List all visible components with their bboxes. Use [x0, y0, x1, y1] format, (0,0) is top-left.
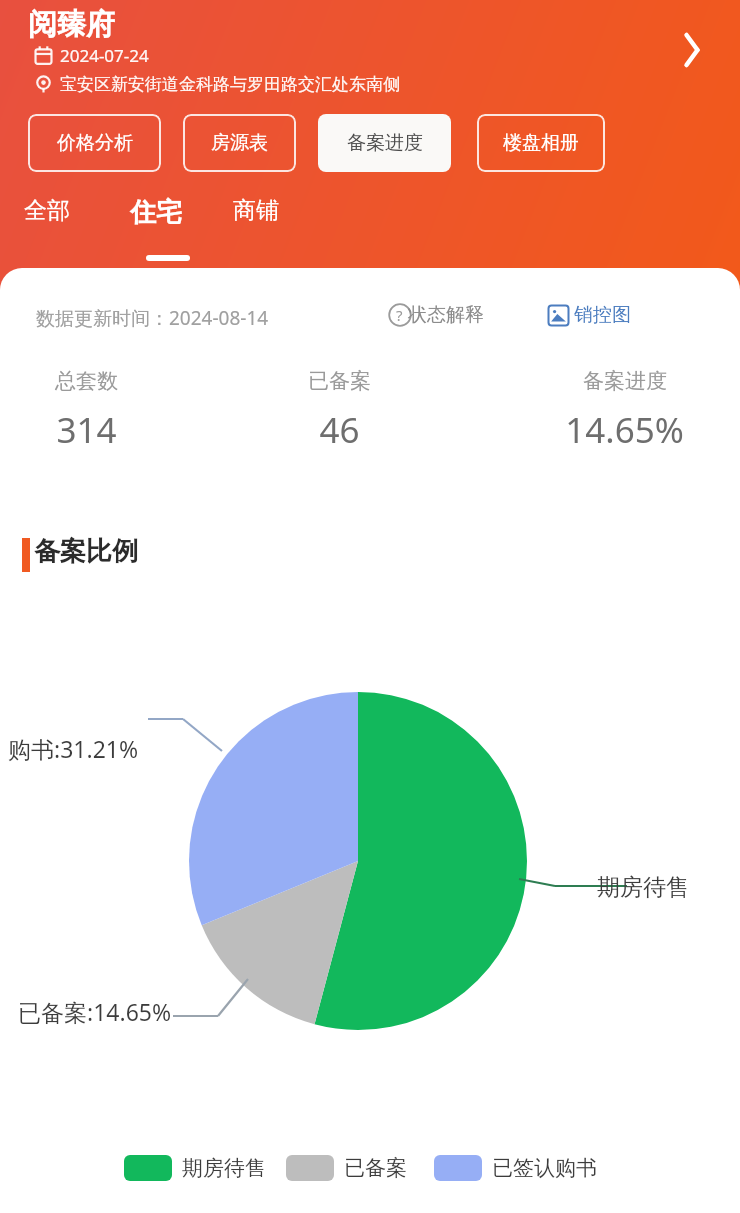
button[interactable]: 楼盘相册 — [477, 114, 605, 172]
button[interactable]: 房源表 — [183, 114, 296, 172]
button[interactable]: 总套数 — [0, 368, 176, 454]
staticText: 住宅 — [130, 196, 182, 229]
button[interactable]: 全部 — [24, 196, 70, 254]
staticText: 价格分析 — [57, 131, 133, 155]
button[interactable]: 价格分析 — [28, 114, 161, 172]
staticText: 备案进度 — [583, 368, 667, 394]
staticText: 备案进度 — [347, 131, 423, 155]
button[interactable]: 商铺 — [233, 196, 279, 254]
staticText: 已签认购书 — [492, 1155, 597, 1181]
staticText: 状态解释 — [408, 303, 484, 327]
button[interactable]: 备案进度 — [534, 368, 714, 454]
button[interactable]: ? — [388, 303, 495, 327]
staticText: 购书:31.21% — [8, 733, 139, 764]
staticText: 已备案 — [308, 368, 371, 394]
button[interactable]: 期房待售 — [124, 1155, 266, 1181]
staticText: 46 — [319, 406, 360, 454]
staticText: 楼盘相册 — [503, 131, 579, 155]
staticText: ? — [396, 305, 403, 325]
staticText: 销控图 — [574, 303, 631, 327]
staticText: 2024-07-24 — [60, 44, 149, 67]
staticText: 全部 — [24, 196, 70, 225]
staticText: 期房待售 — [597, 873, 689, 902]
staticText: 14.65% — [565, 406, 684, 454]
staticText: 宝安区新安街道金科路与罗田路交汇处东南侧 — [60, 74, 400, 95]
button[interactable]: 已签认购书 — [434, 1155, 597, 1181]
staticText: 数据更新时间：2024-08-14 — [36, 305, 269, 331]
staticText: 总套数 — [55, 368, 118, 394]
button[interactable]: More — [664, 22, 720, 78]
staticText: 商铺 — [233, 196, 279, 225]
staticText: 阅臻府 — [28, 6, 115, 43]
staticText: 已备案:14.65% — [18, 996, 172, 1027]
staticText: 备案比例 — [34, 535, 138, 568]
button[interactable]: 住宅 — [130, 196, 182, 254]
staticText: 314 — [56, 406, 117, 454]
button[interactable]: 销控图 — [547, 303, 631, 327]
staticText: 已备案 — [344, 1155, 407, 1181]
staticText: 期房待售 — [182, 1155, 266, 1181]
button[interactable]: 已备案 — [249, 368, 429, 454]
button[interactable]: 已备案 — [286, 1155, 407, 1181]
staticText: 房源表 — [211, 131, 268, 155]
button[interactable]: 备案进度 — [318, 114, 451, 172]
